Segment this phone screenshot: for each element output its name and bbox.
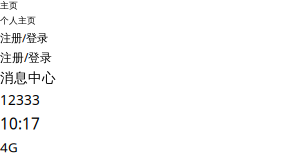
staticText: 注册/登录 bbox=[0, 49, 52, 65]
staticText: 4G bbox=[0, 138, 18, 156]
staticText: 消息中心 bbox=[0, 69, 56, 86]
staticText: 主页 bbox=[0, 0, 18, 11]
staticText: 10:17 bbox=[0, 113, 40, 134]
staticText: 12333 bbox=[0, 90, 40, 109]
staticText: 个人主页 bbox=[0, 15, 36, 26]
staticText: 注册/登录 bbox=[0, 30, 48, 45]
